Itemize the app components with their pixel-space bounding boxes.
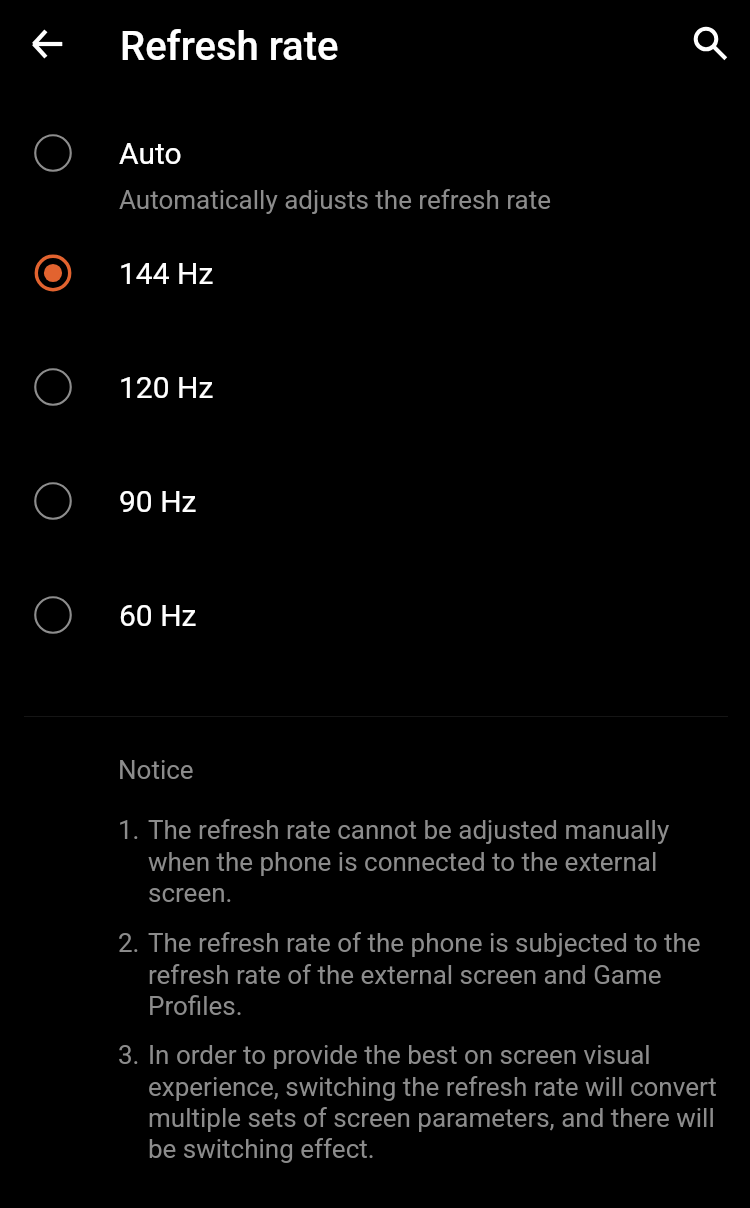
staticText: 1. [118,815,148,845]
staticText: Refresh rate [120,23,339,70]
staticText: 144 Hz [119,256,214,291]
staticText: 2. [118,928,148,958]
staticText: 120 Hz [119,370,214,405]
button[interactable]: Auto [0,96,750,238]
button[interactable]: Back [13,10,85,82]
staticText: 3. [118,1040,148,1070]
staticText: Notice [118,755,194,785]
button[interactable]: 120 Hz [0,330,750,444]
button[interactable]: 144 Hz [0,216,750,330]
staticText: The refresh rate cannot be adjusted manu… [148,815,722,908]
button[interactable]: Search [670,3,742,75]
button[interactable]: 60 Hz [0,558,750,672]
staticText: Automatically adjusts the refresh rate [119,185,552,215]
staticText: In order to provide the best on screen v… [148,1040,722,1164]
button[interactable]: 90 Hz [0,444,750,558]
staticText: The refresh rate of the phone is subject… [148,928,722,1021]
staticText: Auto [119,136,182,171]
staticText: 90 Hz [119,484,197,519]
staticText: 60 Hz [119,598,197,633]
